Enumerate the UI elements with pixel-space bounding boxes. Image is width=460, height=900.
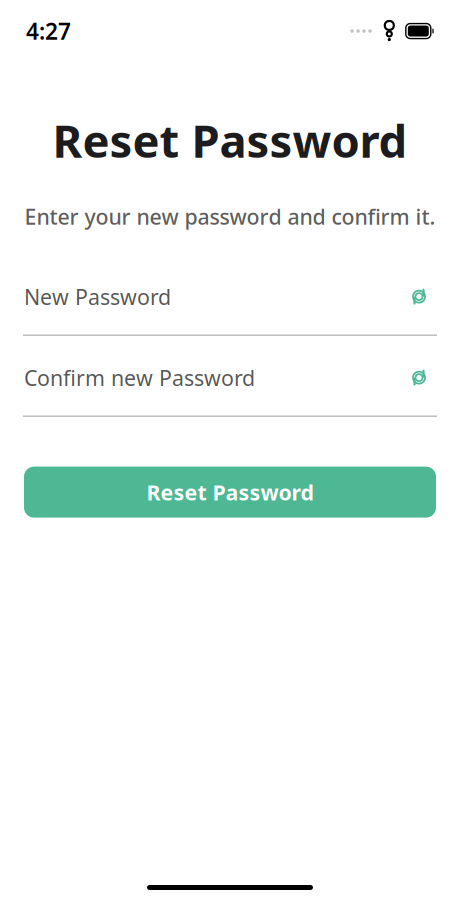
staticText: Enter your new password and confirm it. [24,202,435,231]
button[interactable]: Reset Password [24,467,436,518]
staticText: 4:27 [26,16,71,46]
button[interactable]: Show password [402,363,436,393]
staticText: Reset Password [146,478,313,506]
button[interactable]: Show password [402,282,436,312]
staticText: Confirm new Password [24,363,255,392]
staticText: New Password [24,282,171,311]
staticText: Reset Password [52,110,407,170]
